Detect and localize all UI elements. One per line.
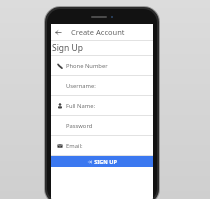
button[interactable]: Back bbox=[51, 25, 65, 39]
staticText: Sign Up bbox=[52, 42, 83, 54]
staticText: Phone Number bbox=[66, 62, 108, 70]
button[interactable]: SIGN UP bbox=[51, 156, 153, 167]
staticText: Create Account bbox=[71, 27, 125, 37]
button[interactable]: Phone Number bbox=[51, 56, 153, 75]
staticText: Password bbox=[66, 122, 93, 130]
button[interactable]: Email: bbox=[51, 136, 153, 155]
staticText: SIGN UP bbox=[94, 158, 117, 165]
staticText: Email: bbox=[66, 142, 83, 150]
button[interactable]: Full Name: bbox=[51, 96, 153, 115]
button[interactable]: Password bbox=[51, 116, 153, 135]
staticText: Full Name: bbox=[66, 102, 95, 110]
button[interactable]: Username: bbox=[51, 76, 153, 95]
staticText: Username: bbox=[66, 82, 96, 90]
